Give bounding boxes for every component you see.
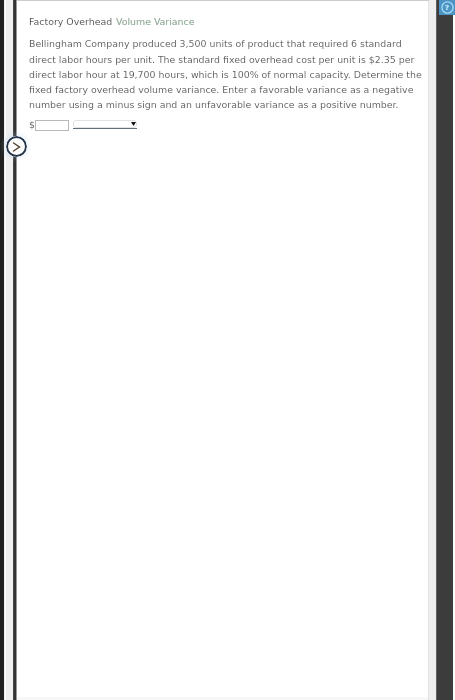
button[interactable]: Next question [6, 136, 27, 157]
staticText: ? [445, 4, 450, 12]
staticText: number using a minus sign and an unfavor… [29, 99, 399, 110]
staticText: Volume Variance [116, 16, 195, 27]
button[interactable]: Answer amount [35, 120, 69, 131]
button[interactable]: Help [439, 0, 455, 15]
staticText: direct labor hour at 19,700 hours, which… [29, 69, 422, 80]
button[interactable]: Select variance type [73, 120, 137, 129]
staticText: Bellingham Company produced 3,500 units … [29, 38, 402, 49]
staticText: fixed factory overhead volume variance. … [29, 84, 414, 95]
staticText: $ [29, 119, 35, 130]
staticText: Factory Overhead [29, 16, 116, 27]
staticText: direct labor hours per unit. The standar… [29, 54, 415, 65]
